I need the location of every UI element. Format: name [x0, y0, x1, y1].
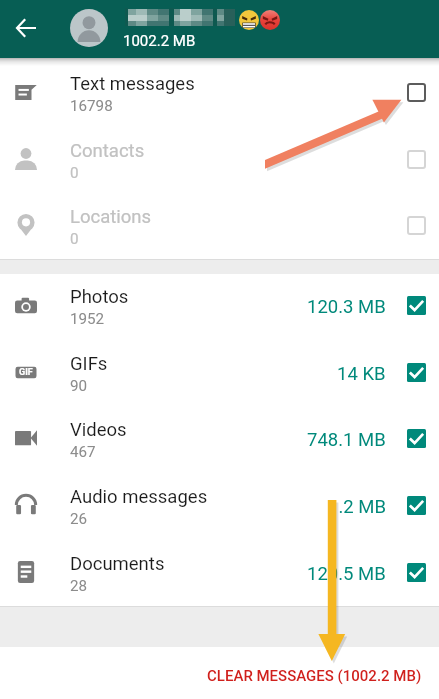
staticText: 120.3 MB	[307, 296, 386, 318]
button[interactable]: Contacts	[0, 126, 439, 192]
staticText: 0	[70, 230, 79, 248]
staticText: 1952	[70, 310, 105, 328]
staticText: 28	[70, 577, 88, 595]
staticText: Videos	[70, 419, 127, 441]
staticText: Text messages	[70, 73, 195, 95]
button[interactable]: Audio messages	[0, 472, 439, 538]
staticText: 1002.2 MB	[123, 32, 196, 50]
staticText: GIF	[19, 367, 33, 378]
button[interactable]: Locations	[0, 192, 439, 258]
staticText: Contacts	[70, 140, 145, 162]
staticText: 748.1 MB	[307, 429, 386, 451]
button[interactable]: Documents	[0, 539, 439, 605]
button[interactable]: Photos	[0, 272, 439, 338]
staticText: GIFs	[70, 353, 108, 375]
staticText: CLEAR MESSAGES (1002.2 MB)	[207, 667, 422, 685]
staticText: Documents	[70, 553, 165, 575]
staticText: 1.2 MB	[328, 496, 386, 518]
staticText: 467	[70, 443, 96, 461]
button[interactable]: GIF	[0, 339, 439, 405]
staticText: 26	[70, 510, 88, 528]
button[interactable]: Videos	[0, 405, 439, 471]
button[interactable]: Text messages	[0, 59, 439, 125]
staticText: 16798	[70, 97, 113, 115]
staticText: Photos	[70, 286, 129, 308]
staticText: 120.5 MB	[307, 563, 386, 585]
staticText: Audio messages	[70, 486, 208, 508]
staticText: 90	[70, 377, 88, 395]
staticText: 0	[70, 164, 79, 182]
button[interactable]: Back	[6, 8, 46, 48]
button[interactable]: CLEAR MESSAGES (1002.2 MB)	[0, 647, 439, 699]
staticText: 14 KB	[337, 363, 386, 385]
staticText: Locations	[70, 206, 152, 228]
